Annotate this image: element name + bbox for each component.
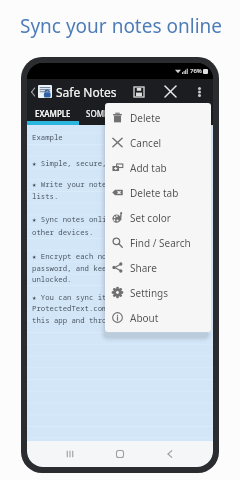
staticText: ★ Encrypt each note with: [32, 251, 138, 261]
staticText: Sync your notes online: [20, 13, 222, 39]
staticText: Delete: [130, 111, 161, 125]
staticText: unlocked.: [32, 274, 72, 284]
button[interactable]: Delete tab: [105, 180, 211, 205]
staticText: ★ You can sync it with: [32, 292, 129, 302]
button[interactable]: About: [105, 305, 211, 330]
staticText: EXAMPLE: [35, 108, 71, 119]
button[interactable]: More options: [191, 79, 207, 104]
button[interactable]: Share: [105, 255, 211, 280]
button[interactable]: Home: [108, 441, 132, 467]
staticText: Delete tab: [130, 186, 179, 200]
button[interactable]: EXAMPLE: [27, 104, 79, 123]
staticText: 76%: [190, 67, 202, 75]
button[interactable]: Set color: [105, 205, 211, 230]
staticText: Example: [32, 132, 63, 142]
button[interactable]: Find / Search: [105, 230, 211, 255]
staticText: ★ Simple, secure, fast.: [32, 158, 133, 168]
button[interactable]: Back: [28, 81, 37, 103]
staticText: About: [130, 311, 159, 325]
staticText: SOME TAB: [86, 108, 125, 119]
staticText: Settings: [130, 286, 169, 300]
staticText: password, and keep some: [32, 263, 133, 273]
staticText: Share: [130, 261, 157, 275]
staticText: ProtectedText.com through: [32, 303, 142, 313]
button[interactable]: Save: [126, 79, 152, 104]
staticText: Cancel: [130, 136, 162, 150]
staticText: Find / Search: [130, 236, 191, 250]
button[interactable]: Close: [157, 79, 183, 104]
staticText: Safe Notes: [56, 84, 117, 100]
staticText: this app and through web.: [32, 315, 142, 325]
button[interactable]: SOME TAB: [79, 104, 131, 123]
staticText: ★ Sync notes online to: [32, 214, 129, 224]
staticText: ★ Write your notes or: [32, 179, 124, 189]
button[interactable]: Back: [158, 441, 182, 467]
button[interactable]: Delete: [105, 105, 211, 130]
button[interactable]: Cancel: [105, 130, 211, 155]
staticText: lists.: [32, 191, 59, 201]
staticText: other devices.: [32, 227, 94, 237]
button[interactable]: Settings: [105, 280, 211, 305]
button[interactable]: Recents: [58, 441, 82, 467]
staticText: Set color: [130, 211, 171, 225]
staticText: Add tab: [130, 161, 167, 175]
button[interactable]: Add tab: [105, 155, 211, 180]
